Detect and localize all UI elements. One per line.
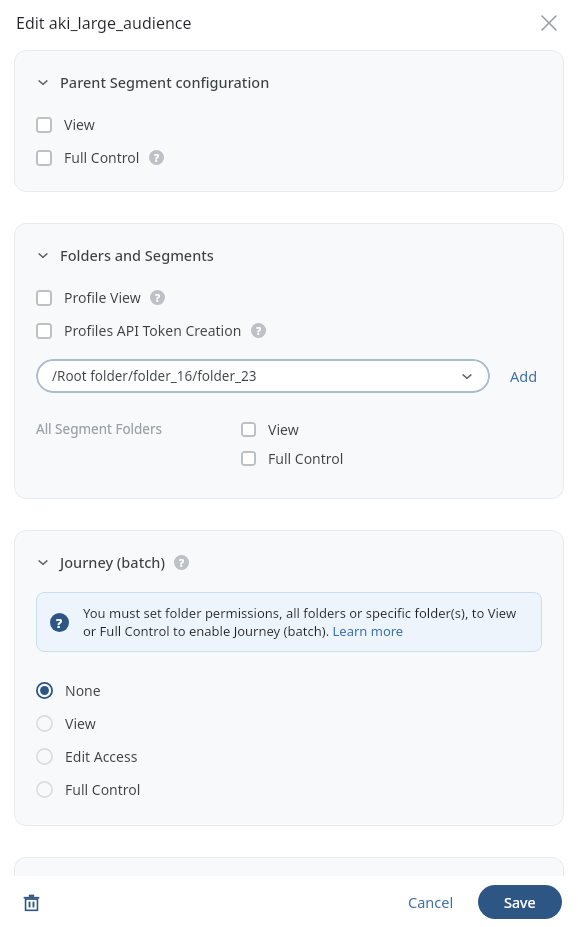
button[interactable]: Save	[478, 885, 562, 919]
staticText: Profile View	[64, 288, 141, 307]
button[interactable]: View	[36, 707, 542, 740]
staticText: All Segment Folders	[36, 420, 163, 438]
staticText: ?	[56, 614, 63, 632]
staticText: Add	[510, 366, 538, 386]
staticText: Profiles API Token Creation	[64, 321, 242, 340]
button[interactable]: Journey (batch)	[36, 550, 189, 574]
button[interactable]: Profiles API Token Creation	[36, 316, 266, 345]
staticText: ?	[154, 150, 160, 165]
staticText: Journey (batch)	[60, 552, 165, 572]
button[interactable]: Full Control	[36, 143, 164, 172]
staticText: None	[65, 681, 101, 700]
button[interactable]: Edit Access	[36, 740, 542, 773]
staticText: Edit aki_large_audience	[16, 12, 192, 34]
button[interactable]: Profile View	[36, 283, 165, 312]
staticText: ?	[256, 323, 262, 338]
button[interactable]: Delete	[14, 885, 48, 919]
staticText: Full Control	[65, 780, 141, 799]
staticText: Cancel	[408, 892, 454, 912]
staticText: Parent Segment configuration	[60, 72, 270, 92]
button[interactable]: Parent Segment configuration	[36, 70, 270, 94]
button[interactable]: View	[36, 110, 95, 139]
button[interactable]: Close	[534, 8, 564, 38]
staticText: Folders and Segments	[60, 245, 214, 265]
button[interactable]: None	[36, 674, 542, 707]
staticText: ?	[179, 555, 185, 570]
staticText: View	[268, 420, 299, 439]
staticText: ?	[155, 290, 161, 305]
staticText: Edit Access	[65, 747, 138, 766]
staticText: View	[65, 714, 96, 733]
button[interactable]: Add	[506, 362, 542, 390]
button[interactable]: Cancel	[396, 884, 466, 920]
staticText: Full Control	[268, 449, 344, 468]
staticText: /Root folder/folder_16/folder_23	[52, 367, 257, 385]
staticText: View	[64, 115, 95, 134]
staticText: You must set folder permissions, all fol…	[83, 604, 528, 640]
button[interactable]: Full Control	[36, 773, 542, 806]
button[interactable]: View	[241, 415, 299, 444]
staticText: Save	[504, 892, 536, 912]
staticText: Full Control	[64, 148, 140, 167]
button[interactable]: Folders and Segments	[36, 243, 214, 267]
button[interactable]: /Root folder/folder_16/folder_23	[36, 359, 490, 393]
button[interactable]: Full Control	[241, 444, 344, 473]
